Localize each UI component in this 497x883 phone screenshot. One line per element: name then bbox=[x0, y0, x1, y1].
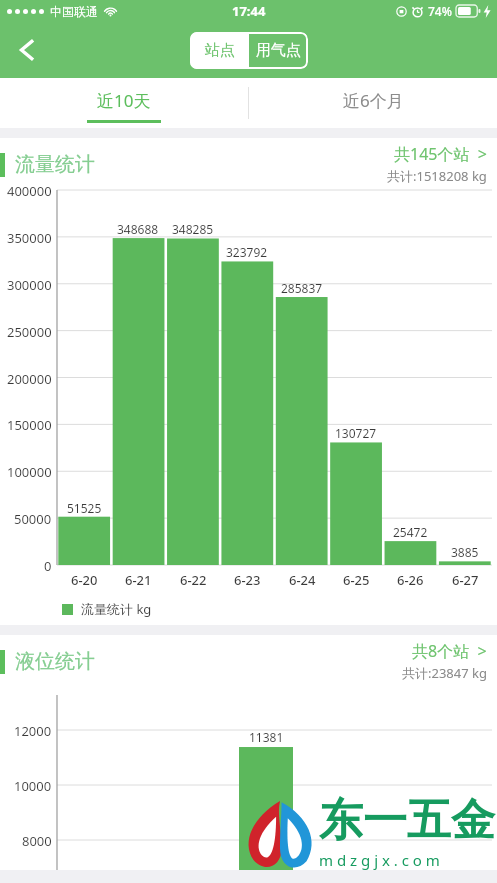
button[interactable]: 共8个站 > bbox=[412, 640, 487, 662]
staticText: 11381 bbox=[249, 729, 284, 745]
staticText: 共8个站 > bbox=[412, 640, 487, 662]
staticText: 150000 bbox=[7, 416, 52, 434]
staticText: 8000 bbox=[22, 832, 52, 850]
staticText: 348688 bbox=[117, 221, 159, 237]
staticText: 300000 bbox=[7, 276, 52, 294]
staticText: 6-23 bbox=[234, 571, 261, 589]
staticText: 站点 bbox=[205, 41, 235, 60]
staticText: 348285 bbox=[172, 221, 214, 237]
staticText: 6-27 bbox=[452, 571, 479, 589]
staticText: 350000 bbox=[7, 229, 52, 247]
staticText: 25472 bbox=[393, 524, 428, 540]
staticText: 6-26 bbox=[397, 571, 424, 589]
staticText: 6-24 bbox=[289, 571, 316, 589]
staticText: 12000 bbox=[14, 722, 52, 740]
staticText: 近10天 bbox=[97, 89, 151, 112]
staticText: 流量统计 bbox=[15, 152, 95, 177]
staticText: 200000 bbox=[7, 370, 52, 388]
staticText: 流量统计 kg bbox=[81, 600, 152, 618]
staticText: 51525 bbox=[67, 500, 102, 516]
staticText: 中国联通 bbox=[50, 4, 98, 19]
staticText: 共计:23847 kg bbox=[402, 664, 487, 682]
staticText: 0 bbox=[44, 557, 52, 575]
staticText: 50000 bbox=[14, 510, 52, 528]
staticText: 10000 bbox=[14, 777, 52, 795]
staticText: 6-21 bbox=[125, 571, 152, 589]
staticText: 6-20 bbox=[71, 571, 98, 589]
staticText: 74% bbox=[428, 3, 452, 19]
staticText: 3885 bbox=[451, 544, 479, 560]
staticText: 用气点 bbox=[256, 41, 301, 60]
button[interactable]: Back bbox=[0, 22, 54, 78]
staticText: 近6个月 bbox=[343, 89, 404, 112]
staticText: 323792 bbox=[226, 244, 268, 260]
staticText: 130727 bbox=[335, 425, 377, 441]
button[interactable]: 近6个月 bbox=[249, 78, 497, 128]
staticText: 共计:1518208 kg bbox=[387, 167, 487, 185]
staticText: 285837 bbox=[281, 280, 323, 296]
staticText: 250000 bbox=[7, 323, 52, 341]
button[interactable]: 用气点 bbox=[249, 32, 308, 69]
staticText: 6-22 bbox=[180, 571, 207, 589]
staticText: 液位统计 bbox=[15, 649, 95, 674]
staticText: 6-25 bbox=[343, 571, 370, 589]
button[interactable]: 近10天 bbox=[0, 78, 248, 128]
button[interactable]: 站点 bbox=[190, 32, 249, 69]
staticText: 共145个站 > bbox=[394, 143, 487, 165]
staticText: 东一五金 bbox=[319, 793, 495, 848]
staticText: 17:44 bbox=[232, 2, 266, 20]
staticText: 100000 bbox=[7, 463, 52, 481]
staticText: 400000 bbox=[7, 182, 52, 200]
button[interactable]: 共145个站 > bbox=[394, 143, 487, 165]
staticText: m d z g j x . c o m bbox=[319, 850, 440, 870]
